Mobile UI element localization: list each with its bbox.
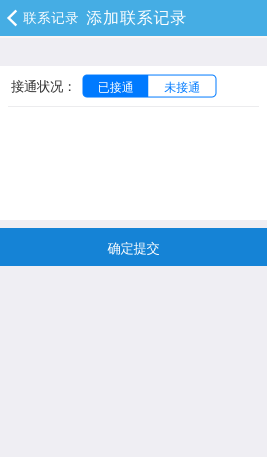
button[interactable]: 未接通	[148, 75, 216, 97]
staticText: 已接通	[98, 80, 134, 95]
button[interactable]: 已接通	[83, 75, 148, 97]
button[interactable]: 确定提交	[0, 228, 267, 266]
staticText: 确定提交	[107, 240, 159, 257]
button[interactable]: 联系记录	[0, 0, 86, 36]
staticText: 添加联系记录	[86, 8, 186, 28]
staticText: 接通状况：	[11, 78, 76, 95]
staticText: 联系记录	[23, 10, 78, 26]
staticText: 未接通	[164, 80, 200, 95]
